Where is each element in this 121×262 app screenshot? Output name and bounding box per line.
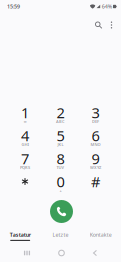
staticText: WXYZ: [90, 165, 101, 170]
staticText: JKL: [57, 142, 63, 147]
staticText: DEF: [92, 119, 99, 124]
button[interactable]: 2: [44, 104, 77, 126]
staticText: TUV: [56, 165, 64, 170]
staticText: Letzte: [52, 231, 68, 238]
staticText: 0: [56, 172, 64, 191]
staticText: GHI: [21, 142, 28, 147]
button[interactable]: Call: [50, 200, 73, 223]
button[interactable]: 0: [44, 173, 77, 195]
staticText: Kontakte: [90, 231, 112, 238]
button[interactable]: 4: [8, 127, 41, 149]
staticText: 2: [56, 103, 64, 122]
staticText: PQRS: [20, 165, 30, 170]
button[interactable]: 9: [79, 150, 112, 172]
button[interactable]: 1: [8, 104, 41, 126]
button[interactable]: #: [79, 173, 112, 195]
button[interactable]: Home: [49, 245, 73, 261]
staticText: 5: [56, 126, 64, 145]
button[interactable]: Recent apps: [15, 245, 39, 261]
button[interactable]: [8, 173, 41, 195]
staticText: MNO: [90, 142, 100, 147]
button[interactable]: Tastatur: [0, 225, 40, 247]
staticText: #: [91, 172, 100, 191]
staticText: 15:59: [7, 3, 20, 10]
staticText: +: [59, 188, 61, 193]
button[interactable]: 3: [79, 104, 112, 126]
staticText: 64%: [102, 3, 112, 10]
button[interactable]: More options: [105, 16, 117, 34]
staticText: Tastatur: [10, 231, 31, 238]
staticText: 1: [21, 103, 29, 122]
staticText: ∞: [23, 119, 26, 124]
staticText: 7: [21, 149, 29, 168]
button[interactable]: Back: [83, 245, 107, 261]
button[interactable]: 8: [44, 150, 77, 172]
button[interactable]: Letzte: [40, 225, 81, 247]
staticText: ABC: [56, 119, 65, 124]
staticText: 9: [91, 149, 99, 168]
staticText: 3: [91, 103, 99, 122]
button[interactable]: Search: [90, 16, 106, 34]
button[interactable]: 6: [79, 127, 112, 149]
button[interactable]: 7: [8, 150, 41, 172]
staticText: 6: [91, 126, 99, 145]
button[interactable]: Kontakte: [81, 225, 121, 247]
button[interactable]: 5: [44, 127, 77, 149]
staticText: 8: [56, 149, 64, 168]
staticText: 4: [21, 126, 29, 145]
